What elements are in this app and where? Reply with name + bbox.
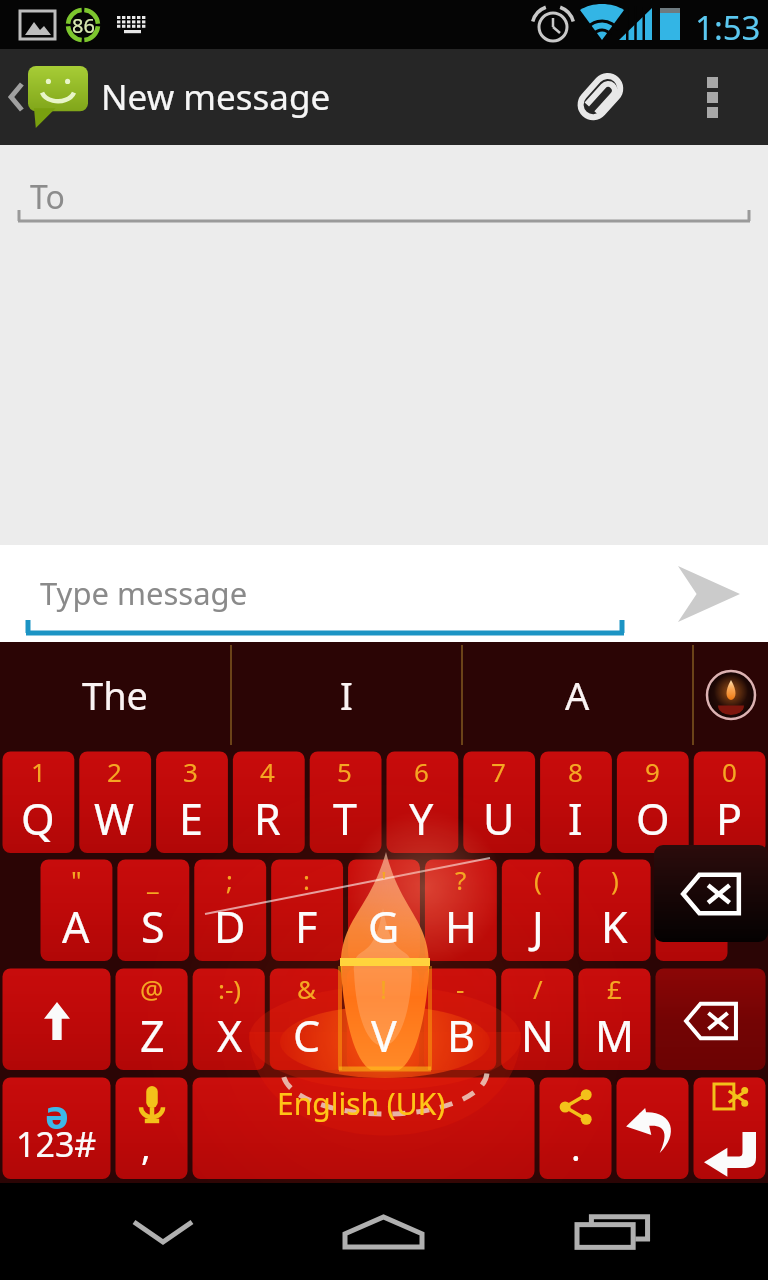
button[interactable]: L xyxy=(653,858,730,965)
button[interactable]: :-) xyxy=(191,967,268,1074)
staticText: : xyxy=(303,862,310,897)
button[interactable]: - xyxy=(422,967,499,1074)
staticText: O xyxy=(636,789,670,848)
staticText: 2 xyxy=(107,754,122,789)
staticText: Y xyxy=(409,789,434,848)
button[interactable]: The xyxy=(0,642,231,748)
button[interactable]: English (UK) xyxy=(190,1076,537,1183)
button[interactable]: Attach xyxy=(556,49,644,145)
button[interactable]: ( xyxy=(499,858,576,965)
button[interactable]: enter xyxy=(691,1076,768,1183)
button[interactable]: 4 xyxy=(229,750,306,857)
button[interactable]: Send xyxy=(650,545,768,642)
staticText: P xyxy=(716,789,743,848)
staticText: 0 xyxy=(722,754,737,789)
staticText: , xyxy=(141,1122,151,1171)
button[interactable]: ə xyxy=(0,1076,113,1183)
staticText: U xyxy=(483,789,515,848)
staticText: M xyxy=(595,1006,635,1065)
button[interactable]: . xyxy=(537,1076,614,1183)
staticText: :-) xyxy=(218,971,242,1006)
button[interactable]: @ xyxy=(113,967,191,1074)
button[interactable]: undo xyxy=(614,1076,691,1183)
staticText: New message xyxy=(101,73,331,121)
button[interactable]: 9 xyxy=(614,750,691,857)
staticText: J xyxy=(532,897,544,956)
staticText: 9 xyxy=(645,754,660,789)
button[interactable]: ; xyxy=(191,858,268,965)
staticText: 123# xyxy=(16,1121,97,1167)
staticText: 1:53 xyxy=(695,5,761,50)
button[interactable]: 2 xyxy=(76,750,152,857)
staticText: B xyxy=(447,1006,475,1065)
button[interactable]: , xyxy=(113,1076,190,1183)
staticText: English (UK) xyxy=(277,1083,446,1124)
button[interactable]: More options xyxy=(664,49,760,145)
staticText: X xyxy=(217,1006,243,1065)
button[interactable]: 0 xyxy=(691,750,768,857)
staticText: ; xyxy=(226,862,233,897)
staticText: _ xyxy=(147,862,159,897)
button[interactable]: Hide keyboard xyxy=(95,1183,230,1280)
staticText: H xyxy=(445,897,477,956)
staticText: . xyxy=(571,1123,581,1172)
staticText: R xyxy=(254,789,281,848)
staticText: G xyxy=(368,897,400,956)
staticText: £ xyxy=(607,971,622,1006)
staticText: Type message xyxy=(40,572,248,614)
staticText: @ xyxy=(140,971,164,1006)
button[interactable]: A xyxy=(462,642,693,748)
button[interactable]: Home xyxy=(316,1183,451,1280)
staticText: 3 xyxy=(183,754,198,789)
button[interactable]: ! xyxy=(345,967,422,1074)
button[interactable]: / xyxy=(499,967,576,1074)
button[interactable]: 3 xyxy=(152,750,229,857)
staticText: - xyxy=(456,971,465,1006)
button[interactable]: shift xyxy=(0,967,113,1074)
staticText: & xyxy=(297,971,317,1006)
staticText: 8 xyxy=(568,754,583,789)
button[interactable]: 8 xyxy=(537,750,614,857)
staticText: F xyxy=(295,897,318,956)
button[interactable]: ' xyxy=(345,858,422,965)
button[interactable]: _ xyxy=(114,858,191,965)
staticText: ə xyxy=(45,1086,69,1140)
button[interactable]: Type message xyxy=(0,545,650,642)
staticText: I xyxy=(568,789,583,848)
staticText: 7 xyxy=(491,754,506,789)
button[interactable]: : xyxy=(268,858,345,965)
staticText: N xyxy=(521,1006,554,1065)
staticText: I xyxy=(340,669,353,721)
button[interactable]: 6 xyxy=(383,750,460,857)
staticText: A xyxy=(62,897,90,956)
button[interactable]: Keyboard theme xyxy=(693,642,768,748)
button[interactable]: & xyxy=(268,967,345,1074)
staticText: D xyxy=(214,897,246,956)
button[interactable]: 5 xyxy=(306,750,383,857)
staticText: E xyxy=(179,789,203,848)
button[interactable]: 7 xyxy=(460,750,537,857)
staticText: Q xyxy=(21,789,55,848)
staticText: K xyxy=(601,897,628,956)
button[interactable]: " xyxy=(38,858,114,965)
button[interactable]: ? xyxy=(422,858,499,965)
button[interactable]: Back xyxy=(0,49,331,145)
staticText: " xyxy=(71,862,82,897)
staticText: A xyxy=(565,669,590,721)
button[interactable]: 1 xyxy=(0,750,76,857)
button[interactable]: ) xyxy=(576,858,653,965)
button[interactable]: I xyxy=(231,642,462,748)
staticText: ) xyxy=(611,862,619,897)
staticText: 1 xyxy=(31,754,46,789)
button[interactable]: Recent apps xyxy=(545,1183,680,1280)
staticText: C xyxy=(293,1006,321,1065)
staticText: To xyxy=(30,175,65,219)
staticText: ! xyxy=(380,971,387,1006)
button[interactable]: backspace xyxy=(653,967,768,1074)
staticText: The xyxy=(82,669,149,721)
button[interactable]: To xyxy=(0,145,768,225)
staticText: ? xyxy=(455,862,467,897)
staticText: L xyxy=(680,882,703,941)
staticText: Z xyxy=(140,1006,165,1065)
button[interactable]: £ xyxy=(576,967,653,1074)
